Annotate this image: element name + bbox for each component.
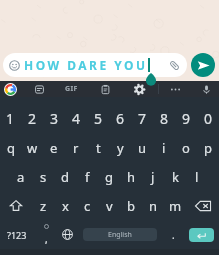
staticText: f [85, 168, 90, 186]
button[interactable]: d [54, 162, 76, 191]
button[interactable]: Settings [133, 83, 146, 96]
button[interactable]: 4 [65, 104, 87, 133]
staticText: b [127, 197, 135, 215]
button[interactable]: 2 [21, 104, 43, 133]
button[interactable]: v [98, 191, 120, 220]
staticText: . [172, 228, 175, 242]
staticText: v [106, 197, 113, 215]
staticText: n [149, 197, 158, 215]
button[interactable]: 8 [153, 104, 175, 133]
button[interactable]: Stickers [33, 83, 46, 96]
staticText: ?123 [7, 229, 27, 241]
staticText: HOW DARE YOU [24, 57, 148, 73]
staticText: z [40, 197, 47, 215]
button[interactable]: f [76, 162, 98, 191]
button[interactable]: 5 [87, 104, 109, 133]
staticText: t [96, 139, 101, 157]
button[interactable]: z [32, 191, 54, 220]
button[interactable]: q [0, 133, 21, 162]
button[interactable]: . [161, 220, 186, 249]
staticText: i [162, 139, 166, 157]
button[interactable]: 0 [197, 104, 219, 133]
button[interactable]: x [54, 191, 76, 220]
staticText: 2 [28, 109, 37, 128]
button[interactable]: Emoji [3, 53, 187, 77]
button[interactable]: o [175, 133, 197, 162]
button[interactable]: c [76, 191, 98, 220]
staticText: 7 [138, 109, 147, 128]
button[interactable]: ?123 [0, 220, 34, 249]
staticText: u [138, 139, 147, 157]
button[interactable]: 3 [43, 104, 65, 133]
button[interactable]: Voice input [200, 83, 213, 96]
staticText: g [105, 168, 113, 186]
staticText: GIF [65, 84, 78, 94]
button[interactable]: u [131, 133, 153, 162]
button[interactable]: k [164, 162, 186, 191]
button[interactable]: Google [4, 83, 17, 96]
staticText: 8 [160, 109, 169, 128]
button[interactable]: l [186, 162, 208, 191]
button[interactable]: n [142, 191, 164, 220]
button[interactable]: English [83, 228, 157, 241]
staticText: r [73, 139, 79, 157]
staticText: e [50, 139, 58, 157]
button[interactable]: , [35, 220, 57, 249]
staticText: English [108, 230, 132, 240]
button[interactable]: i [153, 133, 175, 162]
button[interactable]: j [142, 162, 164, 191]
button[interactable]: r [65, 133, 87, 162]
staticText: 3 [50, 109, 59, 128]
staticText: k [172, 168, 179, 186]
staticText: , [45, 232, 48, 246]
button[interactable]: b [120, 191, 142, 220]
button[interactable]: GIF [65, 84, 78, 94]
button[interactable]: y [109, 133, 131, 162]
staticText: 1 [6, 109, 15, 128]
staticText: x [62, 197, 69, 215]
staticText: m [169, 197, 182, 215]
button[interactable]: p [197, 133, 219, 162]
button[interactable]: w [21, 133, 43, 162]
button[interactable]: h [120, 162, 142, 191]
button[interactable]: Clipboard [99, 83, 112, 96]
staticText: h [127, 168, 136, 186]
staticText: d [61, 168, 69, 186]
button[interactable]: 7 [131, 104, 153, 133]
button[interactable]: 9 [175, 104, 197, 133]
button[interactable]: g [98, 162, 120, 191]
staticText: j [151, 168, 155, 186]
button[interactable]: Change language [57, 220, 78, 249]
button[interactable]: More options [169, 83, 182, 96]
staticText: o [182, 139, 190, 157]
staticText: 0 [204, 109, 213, 128]
button[interactable]: t [87, 133, 109, 162]
button[interactable]: s [32, 162, 54, 191]
staticText: l [195, 168, 199, 186]
other: Attach [168, 59, 181, 72]
staticText: y [117, 139, 124, 157]
button[interactable]: Shift [0, 191, 32, 220]
staticText: p [204, 139, 212, 157]
staticText: c [84, 197, 91, 215]
staticText: 9 [182, 109, 191, 128]
button[interactable]: Enter [189, 228, 214, 242]
staticText: a [17, 168, 25, 186]
staticText: w [27, 139, 38, 157]
button[interactable]: Backspace [186, 191, 219, 220]
staticText: 4 [72, 109, 81, 128]
staticText: 6 [116, 109, 125, 128]
button[interactable]: e [43, 133, 65, 162]
other: Emoji [9, 60, 20, 71]
staticText: 5 [94, 109, 103, 128]
staticText: s [40, 168, 47, 186]
button[interactable]: m [164, 191, 186, 220]
button[interactable]: 1 [0, 104, 21, 133]
button[interactable]: a [10, 162, 32, 191]
button[interactable]: 6 [109, 104, 131, 133]
button[interactable]: Send [191, 53, 215, 77]
staticText: q [7, 139, 15, 157]
